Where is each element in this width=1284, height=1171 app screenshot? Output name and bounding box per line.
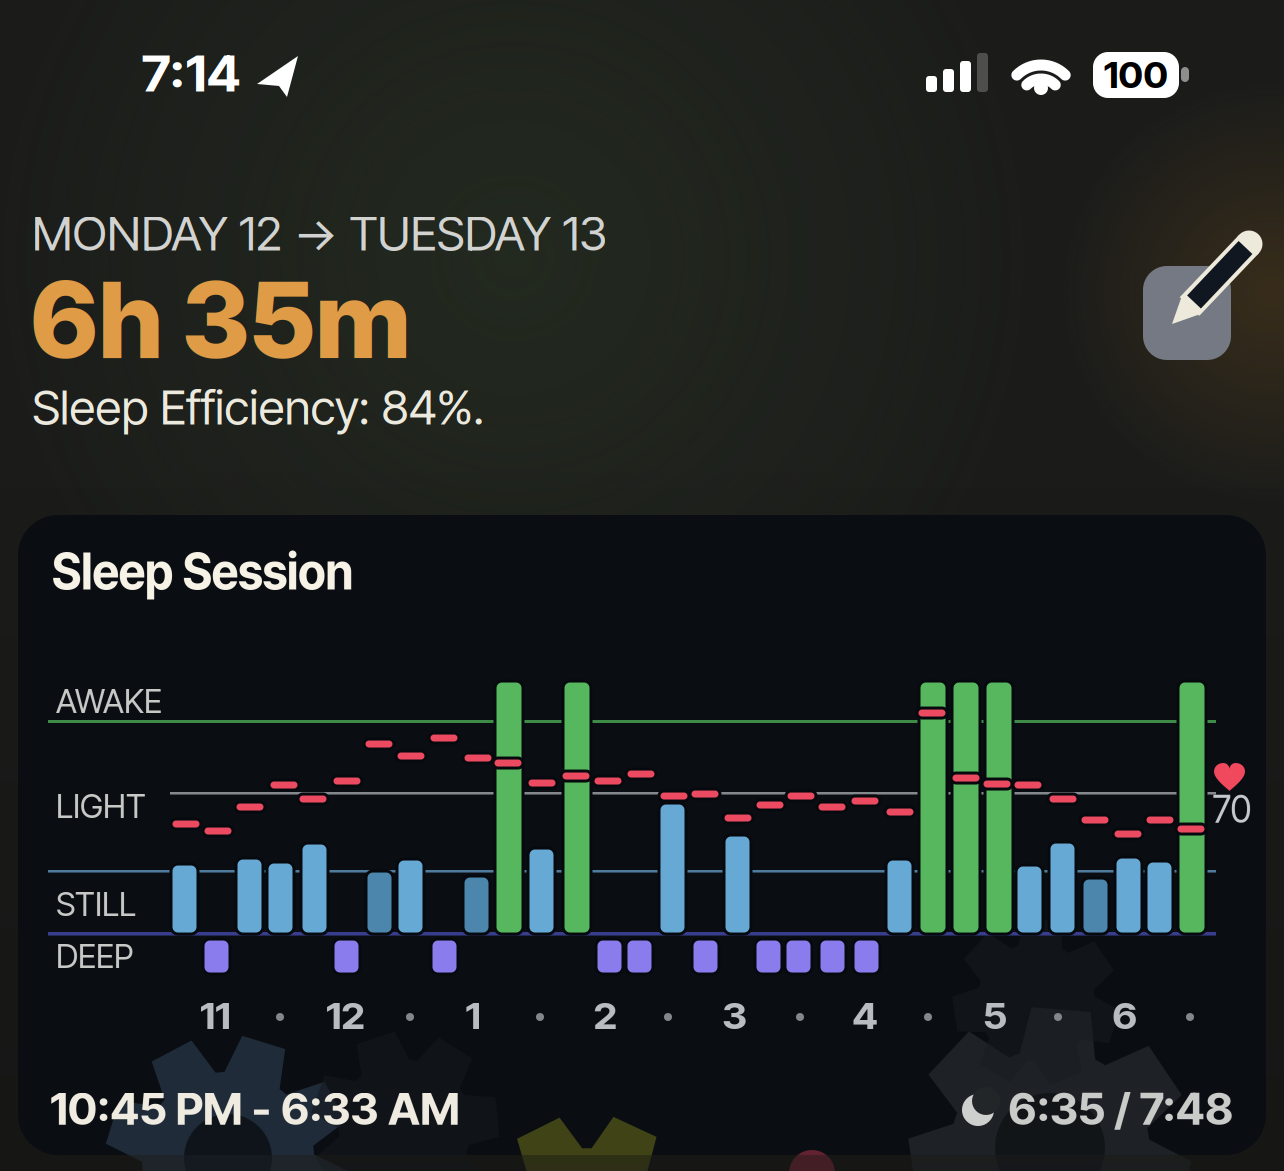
staticText: 2 (594, 994, 615, 1038)
staticText: LIGHT (56, 786, 146, 826)
staticText: 7:14 (146, 45, 236, 103)
staticText: 6 (1113, 994, 1136, 1038)
staticText: STILL (56, 884, 136, 924)
staticText: 4 (853, 994, 876, 1038)
button[interactable]: Sleep Session (18, 515, 1266, 1155)
staticText: 70 (1211, 786, 1252, 832)
staticText: 12 (327, 994, 362, 1038)
staticText: 11 (201, 994, 229, 1038)
staticText: 1 (466, 994, 480, 1038)
staticText: DEEP (56, 936, 133, 976)
staticText: Sleep Session (52, 541, 373, 601)
staticText: AWAKE (56, 681, 162, 721)
staticText: 6:35 / 7:48 (1017, 1083, 1233, 1135)
staticText: 100 (1105, 53, 1167, 97)
staticText: 6h 35m (30, 257, 407, 383)
staticText: MONDAY 12 → TUESDAY 13 (32, 206, 585, 262)
staticText: 10:45 PM - 6:33 AM (50, 1083, 444, 1135)
staticText: Sleep Efficiency: 84%. (32, 380, 467, 436)
staticText: 3 (723, 994, 746, 1038)
button[interactable] (1130, 236, 1265, 366)
staticText: 5 (984, 994, 1006, 1038)
